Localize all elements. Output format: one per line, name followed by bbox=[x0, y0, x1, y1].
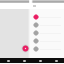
button[interactable] bbox=[30, 21, 64, 29]
button[interactable]: Search bbox=[16, 58, 32, 63]
button[interactable]: Profile bbox=[48, 58, 64, 63]
button[interactable] bbox=[30, 45, 64, 53]
button[interactable]: Favorites bbox=[32, 58, 48, 63]
button[interactable] bbox=[30, 29, 64, 37]
button[interactable] bbox=[30, 13, 64, 21]
button[interactable] bbox=[30, 37, 64, 45]
button[interactable]: Add bbox=[21, 44, 30, 53]
button[interactable]: Home bbox=[0, 58, 16, 63]
